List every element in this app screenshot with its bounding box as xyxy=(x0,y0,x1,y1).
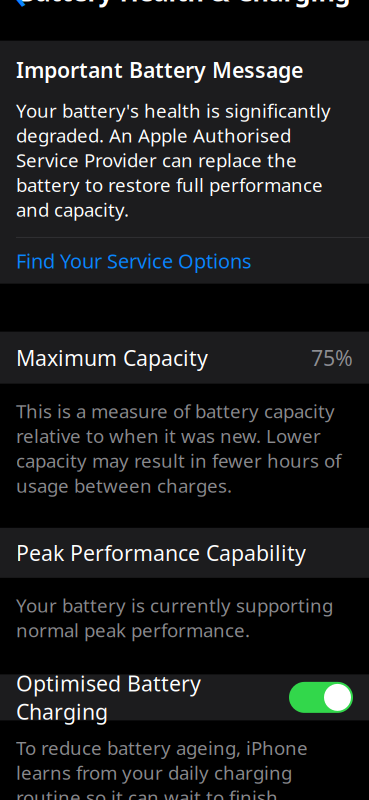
staticText: This is a measure of battery capacity re… xyxy=(16,399,341,498)
staticText: Your battery's health is significantly d… xyxy=(16,98,331,222)
staticText: 75% xyxy=(311,343,353,372)
staticText: Battery Health & Charging xyxy=(18,0,350,8)
button[interactable]: Back xyxy=(0,0,40,14)
staticText: Your battery is currently supporting nor… xyxy=(16,593,333,642)
staticText: Find Your Service Options xyxy=(16,247,252,274)
button[interactable]: Optimised Battery Charging xyxy=(0,674,369,720)
button[interactable]: Find Your Service Options xyxy=(0,238,369,284)
staticText: To reduce battery ageing, iPhone learns … xyxy=(16,735,336,800)
staticText: Maximum Capacity xyxy=(16,343,208,372)
staticText: Important Battery Message xyxy=(16,56,303,84)
staticText: Peak Performance Capability xyxy=(16,539,306,567)
staticText: ‹ xyxy=(12,0,27,22)
staticText: Optimised Battery Charging xyxy=(16,669,201,726)
